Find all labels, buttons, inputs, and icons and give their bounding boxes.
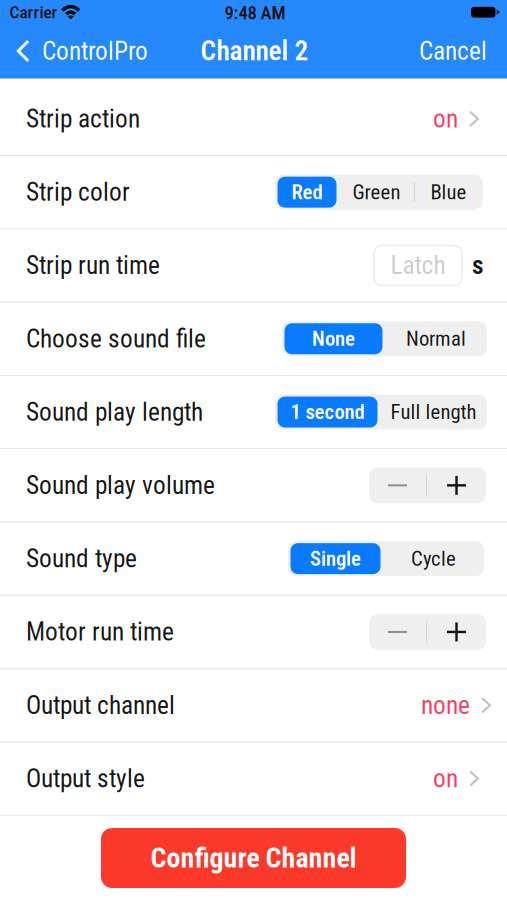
staticText: Cycle xyxy=(411,546,456,571)
button[interactable]: Normal xyxy=(385,321,487,356)
staticText: Full length xyxy=(390,400,476,424)
button[interactable]: ControlPro xyxy=(0,26,186,76)
button[interactable]: Latch xyxy=(374,245,462,285)
staticText: on xyxy=(433,764,458,793)
button[interactable]: Cycle xyxy=(383,541,484,576)
staticText: Latch xyxy=(390,251,445,280)
staticText: Cancel xyxy=(419,36,487,66)
button[interactable]: 1 second xyxy=(275,394,380,429)
staticText: Configure Channel xyxy=(150,842,356,874)
button[interactable]: Output channel xyxy=(0,669,507,742)
button[interactable]: Increase xyxy=(427,467,486,503)
staticText: Normal xyxy=(406,327,466,351)
button[interactable]: None xyxy=(282,321,385,356)
button[interactable]: Blue xyxy=(414,175,483,210)
button[interactable]: Cancel xyxy=(390,26,507,76)
staticText: none xyxy=(421,690,470,720)
staticText: 1 second xyxy=(290,400,364,424)
staticText: 9:48 AM xyxy=(224,2,285,24)
staticText: Strip run time xyxy=(26,251,160,280)
button[interactable]: Increase xyxy=(427,614,486,650)
button[interactable]: Single xyxy=(288,541,383,576)
staticText: Output channel xyxy=(26,690,175,720)
staticText: Strip action xyxy=(26,104,140,134)
button[interactable]: Strip action xyxy=(0,82,507,155)
staticText: Green xyxy=(352,180,400,204)
button[interactable]: Decrease xyxy=(369,614,426,650)
button[interactable]: Full length xyxy=(380,394,487,429)
button[interactable]: Decrease xyxy=(369,467,426,503)
staticText: Output style xyxy=(26,764,145,793)
staticText: s xyxy=(472,251,484,280)
staticText: Sound play length xyxy=(26,397,203,427)
staticText: Carrier xyxy=(9,2,57,22)
button[interactable]: Output style xyxy=(0,742,507,815)
staticText: Motor run time xyxy=(26,617,174,647)
button[interactable]: Green xyxy=(339,175,414,210)
staticText: Channel 2 xyxy=(200,35,308,67)
staticText: ControlPro xyxy=(42,36,148,66)
staticText: Red xyxy=(291,180,322,204)
staticText: Choose sound file xyxy=(26,324,206,354)
staticText: Blue xyxy=(430,180,466,204)
button[interactable]: Configure Channel xyxy=(101,828,406,888)
staticText: Sound play volume xyxy=(26,470,215,500)
staticText: None xyxy=(312,327,355,351)
staticText: Sound type xyxy=(26,544,137,573)
staticText: Strip color xyxy=(26,177,130,207)
staticText: on xyxy=(433,104,458,134)
staticText: Single xyxy=(310,546,361,571)
button[interactable]: Red xyxy=(275,175,339,210)
